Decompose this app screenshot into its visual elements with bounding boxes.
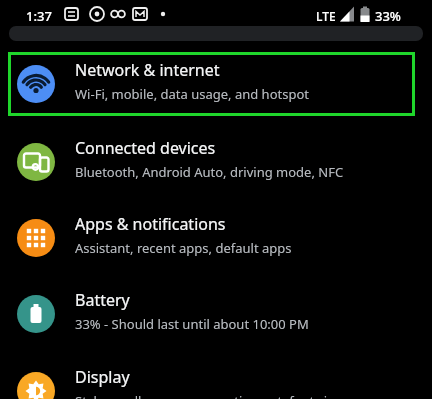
button[interactable]: Apps & notifications (8, 206, 424, 270)
staticText: Connected devices (75, 137, 216, 159)
staticText: Assistant, recent apps, default apps (75, 239, 292, 257)
staticText: 33% - Should last until about 10:00 PM (75, 315, 309, 333)
staticText: 1:37 (26, 7, 52, 25)
staticText: Apps & notifications (75, 213, 226, 235)
staticText: Display (75, 366, 130, 388)
staticText: Battery (75, 289, 130, 311)
button[interactable]: Battery (8, 282, 424, 346)
staticText: 33% (375, 7, 401, 25)
button[interactable]: Connected devices (8, 130, 424, 194)
staticText: LTE (316, 8, 336, 24)
staticText: Network & internet (75, 59, 220, 81)
button[interactable]: Network & internet (8, 52, 415, 116)
staticText: Bluetooth, Android Auto, driving mode, N… (75, 163, 344, 181)
staticText: Wi-Fi, mobile, data usage, and hotspot (75, 85, 309, 103)
staticText: Styles, wallpapers, screen timeout, font… (75, 392, 341, 399)
button[interactable]: Display (8, 359, 424, 399)
